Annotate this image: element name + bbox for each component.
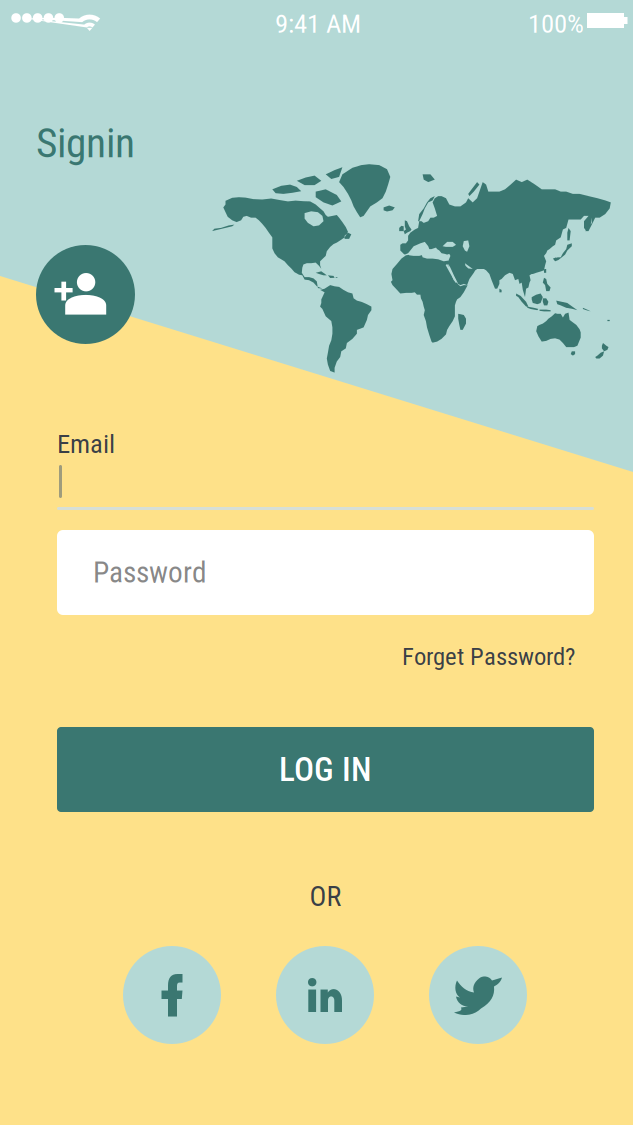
button[interactable]: LOG IN (57, 727, 594, 812)
staticText: Password (93, 555, 207, 590)
staticText: 100% (528, 8, 584, 39)
staticText: Email (57, 428, 115, 460)
button[interactable]: Sign in with Twitter (429, 946, 527, 1044)
button[interactable]: Forget Password? (402, 642, 594, 671)
button[interactable]: Sign in with LinkedIn (276, 946, 374, 1044)
staticText: Forget Password? (402, 642, 575, 671)
button[interactable]: Sign in with Facebook (123, 946, 221, 1044)
button[interactable]: Create account (36, 245, 135, 344)
staticText: 9:41 AM (275, 8, 361, 39)
staticText: OR (309, 880, 341, 913)
staticText: LOG IN (279, 750, 372, 789)
staticText: Signin (36, 119, 135, 167)
